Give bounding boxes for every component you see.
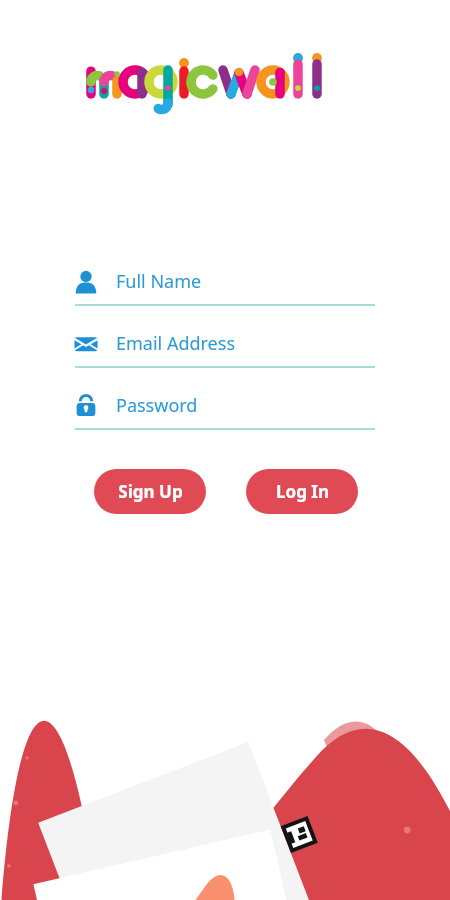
staticText: Password <box>116 393 198 418</box>
staticText: Log In <box>276 480 329 503</box>
staticText: Full Name <box>116 269 202 294</box>
button[interactable]: Log In <box>246 469 358 514</box>
button[interactable]: Email Address <box>72 330 376 378</box>
button[interactable]: Sign Up <box>94 469 206 514</box>
button[interactable]: Full Name <box>72 268 376 316</box>
staticText: Sign Up <box>118 480 183 503</box>
staticText: Email Address <box>116 331 236 356</box>
button[interactable]: Password <box>72 392 376 440</box>
